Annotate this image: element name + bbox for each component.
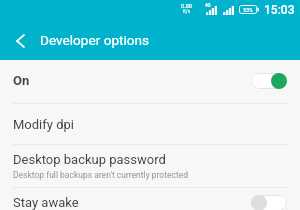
button[interactable]: On (0, 59, 300, 103)
staticText: 4G (205, 3, 211, 8)
staticText: 0.00 (181, 3, 192, 9)
staticText: Modify dpi (13, 117, 74, 132)
staticText: Desktop full backups aren't currently pr… (13, 170, 189, 180)
staticText: Stay awake (13, 195, 79, 210)
button[interactable]: Stay awake (0, 188, 300, 210)
button[interactable]: Desktop backup password (0, 145, 300, 187)
button[interactable]: Modify dpi (0, 104, 300, 144)
staticText: Developer options (40, 32, 150, 48)
staticText: On (13, 73, 30, 88)
staticText: K/s (183, 9, 191, 14)
staticText: 53% (243, 7, 253, 13)
button[interactable]: Navigate up (0, 18, 40, 59)
button[interactable]: Switch off (251, 195, 287, 210)
staticText: Desktop backup password (13, 152, 166, 167)
staticText: 15:03 (264, 3, 295, 17)
button[interactable]: Switch on (251, 73, 287, 89)
